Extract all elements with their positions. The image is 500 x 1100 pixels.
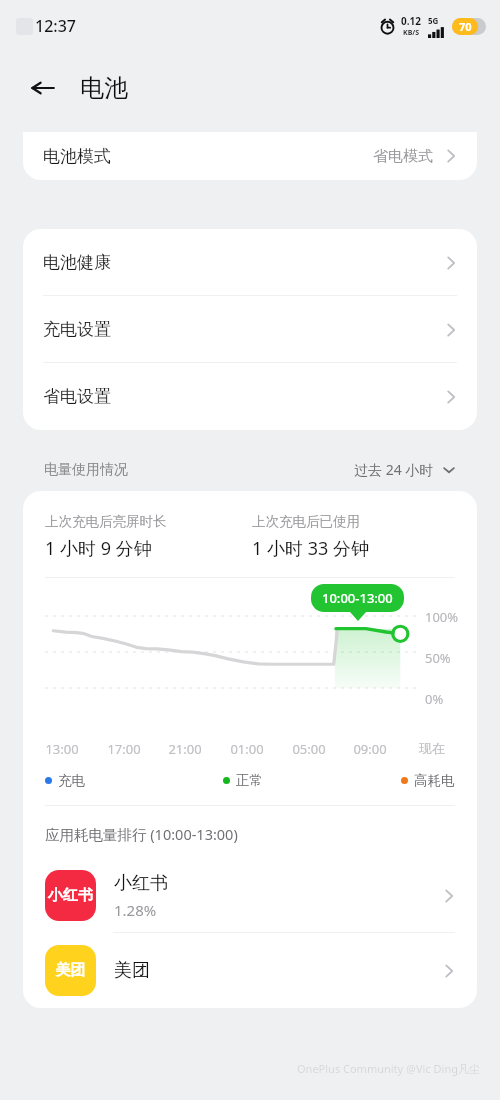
staticText: KB/S <box>403 28 420 38</box>
staticText: 电池 <box>80 73 128 103</box>
staticText: 省电设置 <box>43 386 111 407</box>
button[interactable]: 美团 <box>23 933 477 1008</box>
staticText: 05:00 <box>286 740 332 758</box>
staticText: 100% <box>425 608 459 626</box>
button[interactable]: 过去 24 小时 <box>354 460 456 479</box>
staticText: 正常 <box>236 772 263 789</box>
staticText: 1 小时 9 分钟 <box>45 536 152 561</box>
staticText: 过去 24 小时 <box>354 460 434 479</box>
staticText: 10:00-13:00 <box>322 589 393 607</box>
staticText: 17:00 <box>101 740 147 758</box>
button[interactable]: 电池健康 <box>23 229 477 296</box>
staticText: 50% <box>425 649 451 667</box>
staticText: 充电 <box>58 772 85 789</box>
staticText: 上次充电后已使用 <box>252 513 360 530</box>
button[interactable]: 小红书 <box>23 858 477 933</box>
staticText: 0.12 <box>401 14 421 28</box>
staticText: 09:00 <box>347 740 393 758</box>
staticText: 5G <box>428 15 439 26</box>
staticText: 美团 <box>114 959 150 982</box>
staticText: OnePlus Community @Vic Ding凡尘 <box>297 1061 480 1076</box>
staticText: 省电模式 <box>373 147 433 166</box>
staticText: 21:00 <box>162 740 208 758</box>
button[interactable]: 充电设置 <box>23 296 477 363</box>
staticText: 01:00 <box>224 740 270 758</box>
staticText: 13:00 <box>39 740 85 758</box>
staticText: 70 <box>459 19 472 34</box>
staticText: 应用耗电量排行 (10:00-13:00) <box>45 824 238 844</box>
staticText: 电池模式 <box>43 146 111 167</box>
staticText: 电量使用情况 <box>44 461 128 479</box>
staticText: 小红书 <box>114 872 168 895</box>
button[interactable]: Back <box>22 67 64 109</box>
staticText: 高耗电 <box>414 772 455 789</box>
button[interactable]: 电池模式 <box>23 132 477 180</box>
staticText: 0% <box>425 690 444 708</box>
staticText: 1 小时 33 分钟 <box>252 536 369 561</box>
staticText: 充电设置 <box>43 319 111 340</box>
button[interactable]: 省电设置 <box>23 363 477 430</box>
staticText: 现在 <box>409 740 455 756</box>
staticText: 上次充电后亮屏时长 <box>45 513 167 530</box>
staticText: 1.28% <box>114 900 157 920</box>
staticText: 12:37 <box>35 15 76 37</box>
staticText: 电池健康 <box>43 252 111 273</box>
staticText: 小红书 <box>47 886 94 905</box>
staticText: 美团 <box>47 961 94 980</box>
